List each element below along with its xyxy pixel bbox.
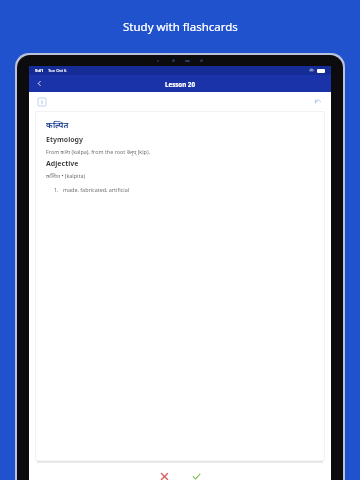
button[interactable]: Incorrect	[153, 465, 175, 480]
staticText: made, fabricated, artificial	[63, 186, 130, 193]
staticText: Lesson 20	[165, 80, 195, 88]
staticText: Tue Oct 6	[48, 68, 67, 74]
staticText: Adjective	[46, 159, 79, 169]
staticText: कल्पित	[46, 119, 69, 130]
staticText: From कल्प (kalpa), from the root क्लृप् …	[46, 148, 150, 155]
button[interactable]: Correct	[185, 465, 207, 480]
staticText: Study with flashcards	[123, 19, 238, 35]
staticText: 1.	[54, 186, 59, 193]
button[interactable]: Info	[35, 95, 49, 109]
button[interactable]: Back	[29, 75, 49, 92]
staticText: Etymology	[46, 135, 84, 145]
staticText: कल्पित • (kalpita)	[46, 172, 86, 179]
button[interactable]: कल्पित	[35, 111, 325, 461]
button[interactable]: Undo	[311, 95, 325, 109]
staticText: 9:41	[35, 68, 44, 74]
